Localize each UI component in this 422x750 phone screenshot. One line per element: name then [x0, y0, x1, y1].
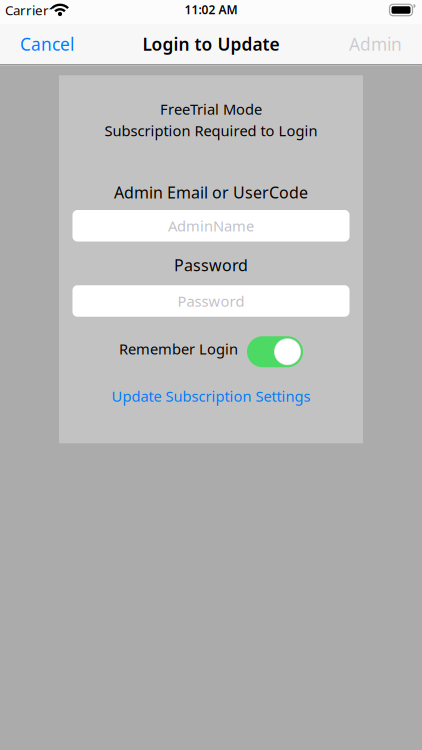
button[interactable]: Remember Login [247, 336, 303, 367]
staticText: Subscription Required to Login [104, 121, 317, 140]
button[interactable]: Update Subscription Settings [111, 386, 310, 406]
staticText: FreeTrial Mode [160, 99, 262, 119]
staticText: Cancel [20, 32, 74, 55]
button[interactable]: Admin [349, 32, 402, 55]
staticText: Password [177, 291, 244, 311]
button[interactable]: AdminName [72, 210, 349, 241]
staticText: AdminName [168, 216, 254, 235]
staticText: Carrier [5, 1, 49, 19]
button[interactable]: Cancel [20, 32, 74, 55]
staticText: Admin Email or UserCode [114, 182, 308, 203]
staticText: Login to Update [142, 32, 279, 55]
staticText: Admin [349, 32, 402, 55]
staticText: Update Subscription Settings [111, 386, 310, 406]
button[interactable]: Password [72, 285, 349, 317]
staticText: Remember Login [119, 339, 238, 358]
staticText: 11:02 AM [184, 1, 237, 17]
staticText: Password [174, 254, 248, 276]
